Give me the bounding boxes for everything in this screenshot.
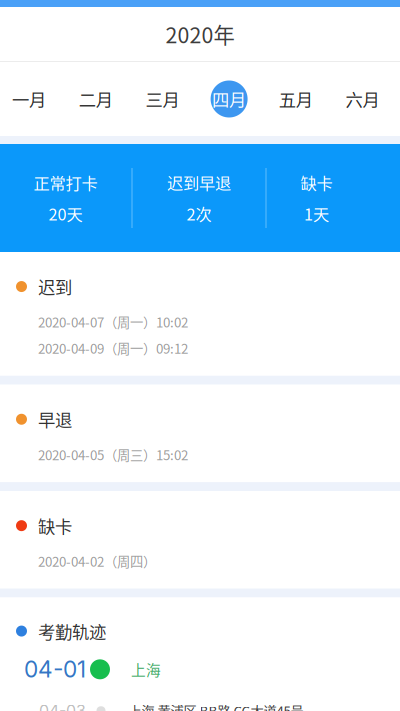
button[interactable]: 三月 xyxy=(144,62,181,136)
button[interactable]: 六月 xyxy=(344,62,381,136)
staticText: 2020年 xyxy=(165,19,234,49)
button[interactable]: 早退 xyxy=(0,385,400,482)
staticText: 二月 xyxy=(79,86,113,112)
staticText: 2次 xyxy=(186,202,211,225)
staticText: 迟到 xyxy=(38,274,72,299)
staticText: 1天 xyxy=(304,202,329,225)
staticText: 缺卡 xyxy=(38,513,72,538)
staticText: 缺卡 xyxy=(300,171,332,194)
staticText: 五月 xyxy=(279,86,313,112)
staticText: 迟到早退 xyxy=(167,171,231,194)
staticText: 上海 xyxy=(131,659,161,680)
staticText: 20天 xyxy=(48,202,82,225)
button[interactable]: 五月 xyxy=(277,62,314,136)
staticText: 正常打卡 xyxy=(33,171,97,194)
staticText: 三月 xyxy=(145,86,179,112)
button[interactable]: 二月 xyxy=(77,62,114,136)
staticText: 一月 xyxy=(12,86,46,112)
staticText: 04-01 xyxy=(24,656,86,683)
staticText: 04-03 xyxy=(39,701,86,711)
button[interactable]: 迟到 xyxy=(0,252,400,376)
staticText: 2020-04-02（周四） xyxy=(38,551,156,570)
button[interactable]: 四月 xyxy=(211,62,248,136)
staticText: 上海 黄浦区 BB路 CC大道45号 xyxy=(128,701,303,711)
staticText: 2020-04-05（周三）15:02 xyxy=(38,445,188,464)
staticText: 六月 xyxy=(345,86,379,112)
staticText: 早退 xyxy=(38,407,72,432)
button[interactable]: 一月 xyxy=(10,62,47,136)
staticText: 考勤轨迹 xyxy=(38,618,106,644)
staticText: 四月 xyxy=(212,86,246,112)
staticText: 2020-04-07（周一）10:02 xyxy=(38,312,188,331)
button[interactable]: 缺卡 xyxy=(0,491,400,588)
staticText: 2020-04-09（周一）09:12 xyxy=(38,338,188,358)
